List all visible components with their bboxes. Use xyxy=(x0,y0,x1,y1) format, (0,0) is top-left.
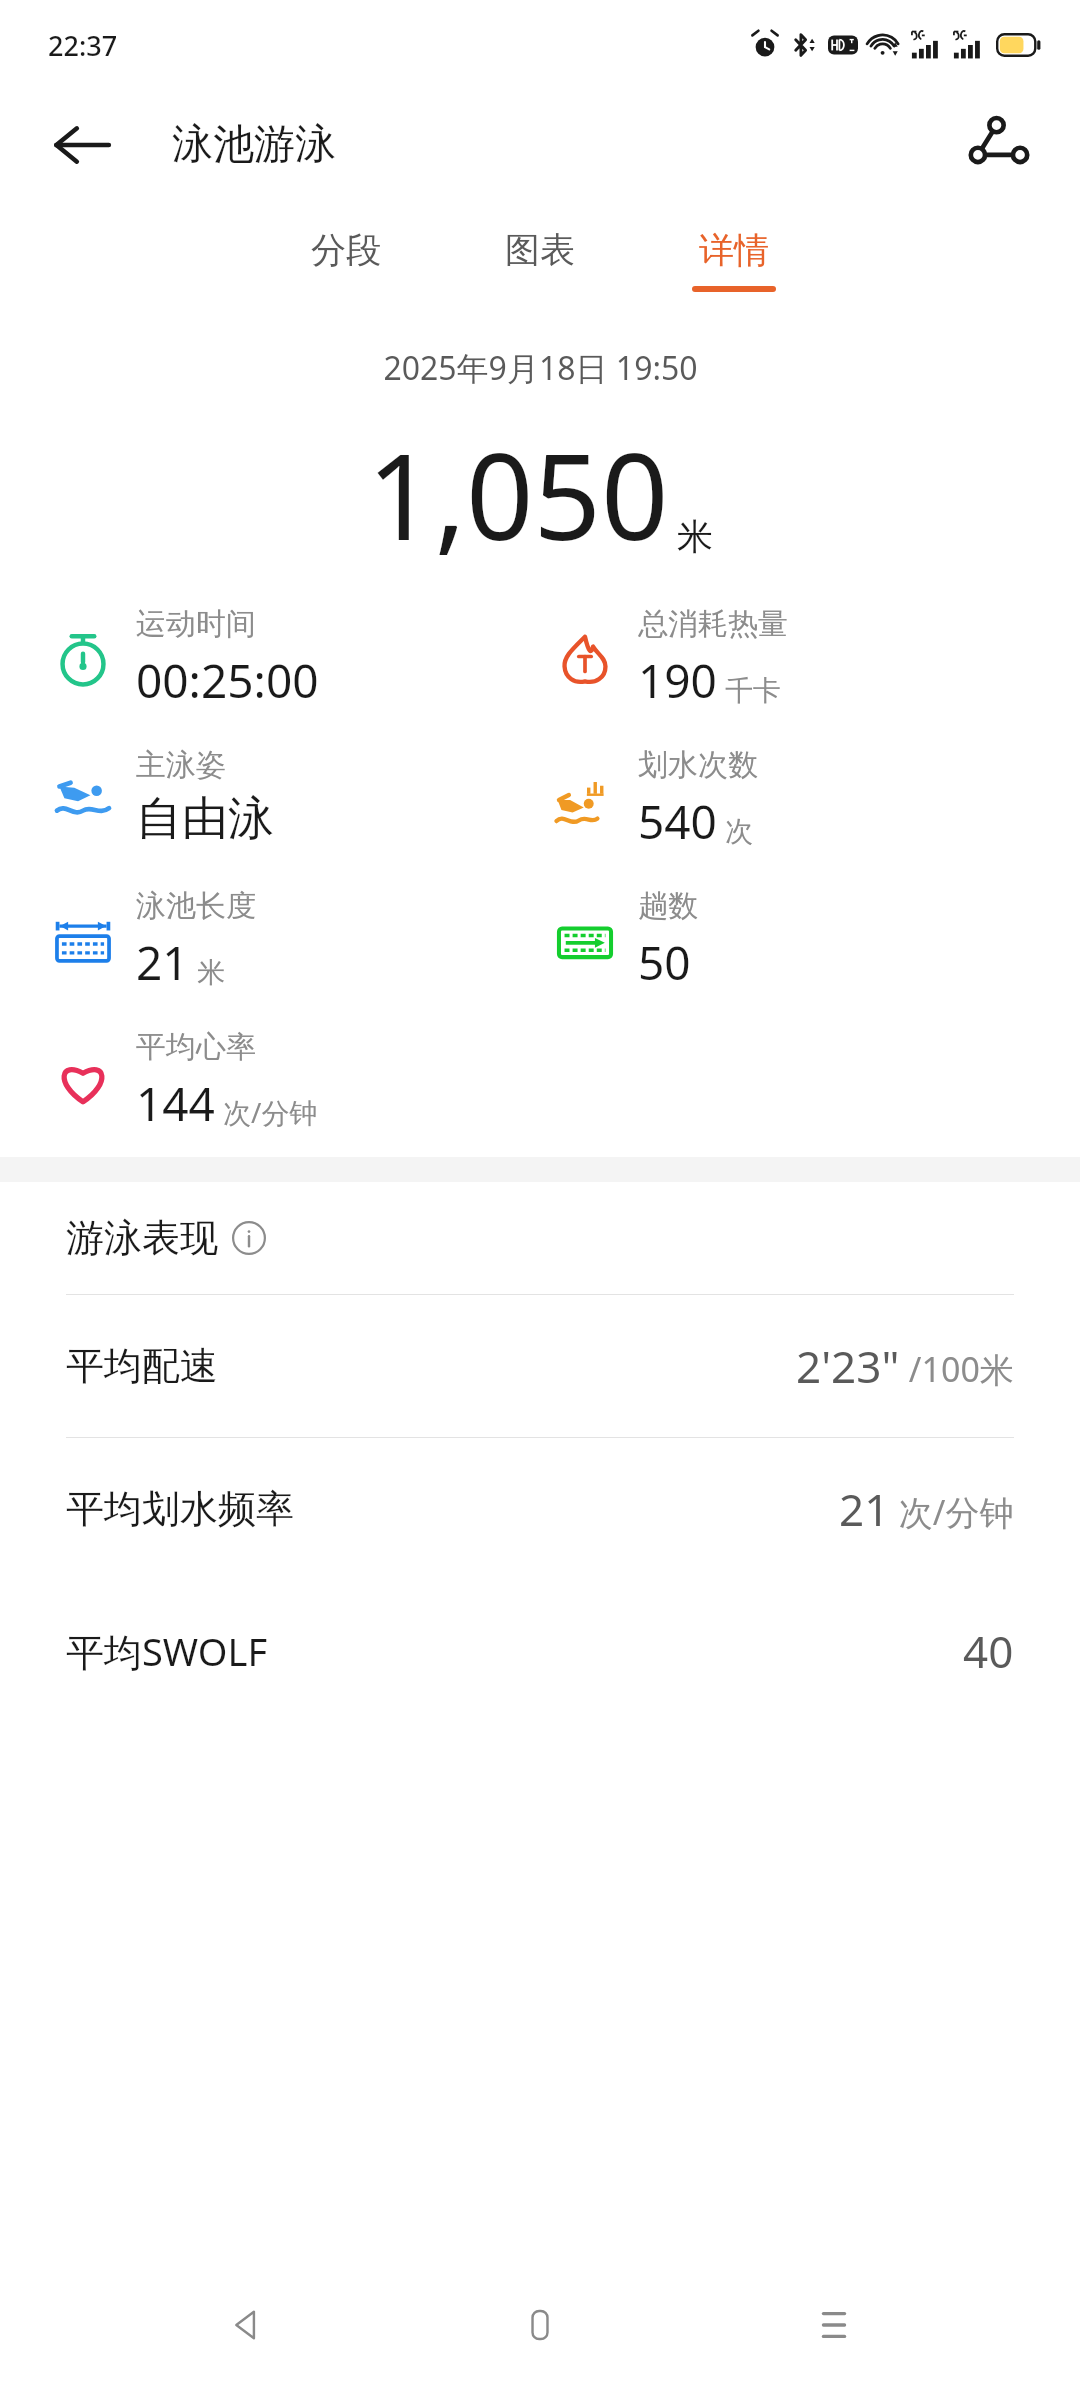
staticText: 自由泳 xyxy=(136,790,274,848)
button[interactable]: Back xyxy=(198,2277,294,2373)
staticText: 平均配速 xyxy=(66,1342,218,1390)
staticText: 图表 xyxy=(505,228,575,272)
staticText: 运动时间 xyxy=(136,605,256,643)
button[interactable]: 运动时间 xyxy=(52,605,319,712)
button[interactable]: Info xyxy=(232,1221,266,1255)
staticText: 21 xyxy=(839,1479,890,1539)
button[interactable]: Home xyxy=(492,2277,588,2373)
staticText: 1,050 xyxy=(367,414,669,575)
staticText: 千卡 xyxy=(725,673,781,708)
button[interactable]: 平均SWOLF xyxy=(0,1580,1080,1722)
staticText: 40 xyxy=(963,1621,1014,1681)
staticText: 分段 xyxy=(311,228,381,272)
staticText: 平均SWOLF xyxy=(66,1625,268,1677)
staticText: 泳池长度 xyxy=(136,887,256,925)
staticText: 次 xyxy=(725,814,753,849)
button[interactable]: 主泳姿 xyxy=(52,746,274,848)
button[interactable]: 划水次数 xyxy=(554,746,758,853)
staticText: 平均心率 xyxy=(136,1028,256,1066)
button[interactable]: 总消耗热量 xyxy=(554,605,788,712)
staticText: 190 xyxy=(638,649,717,712)
staticText: 50 xyxy=(638,931,691,994)
button[interactable]: Share xyxy=(968,114,1030,176)
button[interactable]: Recents xyxy=(786,2277,882,2373)
button[interactable]: 泳池长度 xyxy=(52,887,256,994)
button[interactable]: Back xyxy=(50,113,114,177)
staticText: 2025年9月18日 19:50 xyxy=(383,346,698,390)
staticText: 划水次数 xyxy=(638,746,758,784)
button[interactable]: 详情 xyxy=(680,220,788,300)
staticText: /100米 xyxy=(900,1346,1014,1392)
button[interactable]: 图表 xyxy=(486,220,594,300)
staticText: 游泳表现 xyxy=(66,1214,218,1262)
staticText: 总消耗热量 xyxy=(638,605,788,643)
staticText: 次/分钟 xyxy=(890,1489,1014,1535)
staticText: 泳池游泳 xyxy=(172,119,336,171)
staticText: 平均划水频率 xyxy=(66,1485,294,1533)
staticText: 次/分钟 xyxy=(223,1093,318,1131)
staticText: 2'23" xyxy=(796,1336,900,1396)
staticText: 详情 xyxy=(699,228,769,272)
staticText: 144 xyxy=(136,1072,215,1135)
staticText: 21 xyxy=(136,931,189,994)
staticText: 540 xyxy=(638,790,717,853)
staticText: 米 xyxy=(197,955,225,990)
button[interactable]: 平均划水频率 xyxy=(0,1437,1080,1580)
staticText: 22:37 xyxy=(48,27,118,64)
button[interactable]: 趟数 xyxy=(554,887,698,994)
staticText: 00:25:00 xyxy=(136,649,319,712)
button[interactable]: 平均心率 xyxy=(52,1028,318,1135)
staticText: 米 xyxy=(677,514,713,559)
button[interactable]: 分段 xyxy=(292,220,400,300)
staticText: 趟数 xyxy=(638,887,698,925)
staticText: 主泳姿 xyxy=(136,746,226,784)
button[interactable]: 平均配速 xyxy=(0,1294,1080,1437)
